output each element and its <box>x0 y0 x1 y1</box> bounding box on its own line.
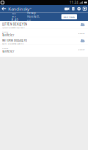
staticText: Tarifeler <box>2 33 14 37</box>
staticText: Tarifeler <box>2 50 14 53</box>
button[interactable]: Menu <box>83 7 86 11</box>
staticText: Detay <box>2 30 8 34</box>
button[interactable]: Documents <box>71 7 75 10</box>
staticText: ® <box>30 7 32 10</box>
button[interactable]: Video <box>64 7 69 10</box>
staticText: Kandinsky <box>8 6 29 12</box>
button[interactable]: Detay <box>0 29 88 37</box>
staticText: Hesap Hareketleri <box>27 11 40 22</box>
button[interactable]: FATURA BİLGİLERİ <box>0 37 88 45</box>
button[interactable]: YENİ İŞLEM <box>61 14 77 19</box>
staticText: LÜTFEN BEKLEYİN <box>2 22 27 26</box>
staticText: TRY 8.40 <box>11 15 18 22</box>
button[interactable]: Back <box>0 6 8 11</box>
button[interactable]: Settings <box>77 7 81 11</box>
button[interactable]: Detay <box>0 45 88 57</box>
staticText: FATURA BİLGİLERİ <box>2 39 27 42</box>
staticText: Göster <box>78 31 85 35</box>
staticText: YENİ İŞLEM <box>63 15 75 18</box>
staticText: işlem devam ediyor <box>2 26 25 29</box>
button[interactable]: LÜTFEN BEKLEYİN <box>0 21 88 29</box>
staticText: Detay <box>2 46 8 50</box>
staticText: Kasa <box>11 12 15 15</box>
staticText: Göster <box>78 48 85 51</box>
staticText: son ödeme tarihi <box>2 42 24 45</box>
staticText: 11:24 <box>69 0 78 4</box>
